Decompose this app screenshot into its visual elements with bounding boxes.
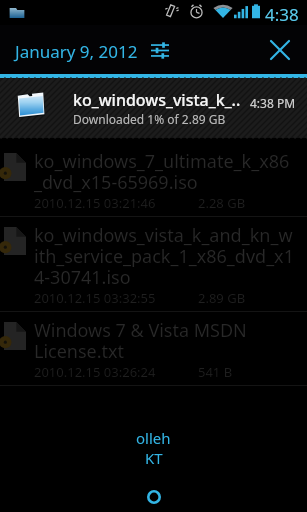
staticText: olleh bbox=[136, 428, 171, 448]
staticText: 2010.12.15 03:21:46 bbox=[34, 194, 156, 212]
staticText: 2010.12.15 03:26:24 bbox=[34, 363, 156, 381]
button[interactable]: Home bbox=[136, 479, 171, 512]
button[interactable]: Sort bbox=[147, 37, 173, 63]
button[interactable]: ko_windows_vista_k_.. bbox=[0, 78, 307, 138]
button[interactable]: ko_windows_vista_k_and_kn_with_service_p… bbox=[0, 217, 307, 311]
staticText: 4:38 PM bbox=[250, 95, 296, 111]
staticText: ko_windows_vista_k_and_kn_with_service_p… bbox=[34, 223, 297, 289]
staticText: Windows 7 & Vista MSDN License.txt bbox=[34, 318, 297, 363]
staticText: ko_windows_vista_k_.. bbox=[73, 89, 241, 111]
button[interactable]: Close bbox=[253, 25, 307, 75]
staticText: 4:38 bbox=[265, 3, 299, 26]
staticText: January 9, 2012 bbox=[15, 40, 138, 63]
staticText: ko_windows_7_ultimate_k_x86_dvd_x15-6596… bbox=[34, 149, 297, 194]
staticText: Downloaded 1% of 2.89 GB bbox=[73, 111, 226, 127]
button[interactable]: Windows 7 & Vista MSDN License.txt bbox=[0, 312, 307, 385]
staticText: 541 B bbox=[198, 363, 233, 381]
button[interactable]: ko_windows_7_ultimate_k_x86_dvd_x15-6596… bbox=[0, 143, 307, 216]
staticText: 2.89 GB bbox=[198, 289, 246, 307]
staticText: 2010.12.15 03:32:55 bbox=[34, 289, 156, 307]
staticText: KT bbox=[145, 448, 163, 468]
staticText: 2.28 GB bbox=[198, 194, 246, 212]
